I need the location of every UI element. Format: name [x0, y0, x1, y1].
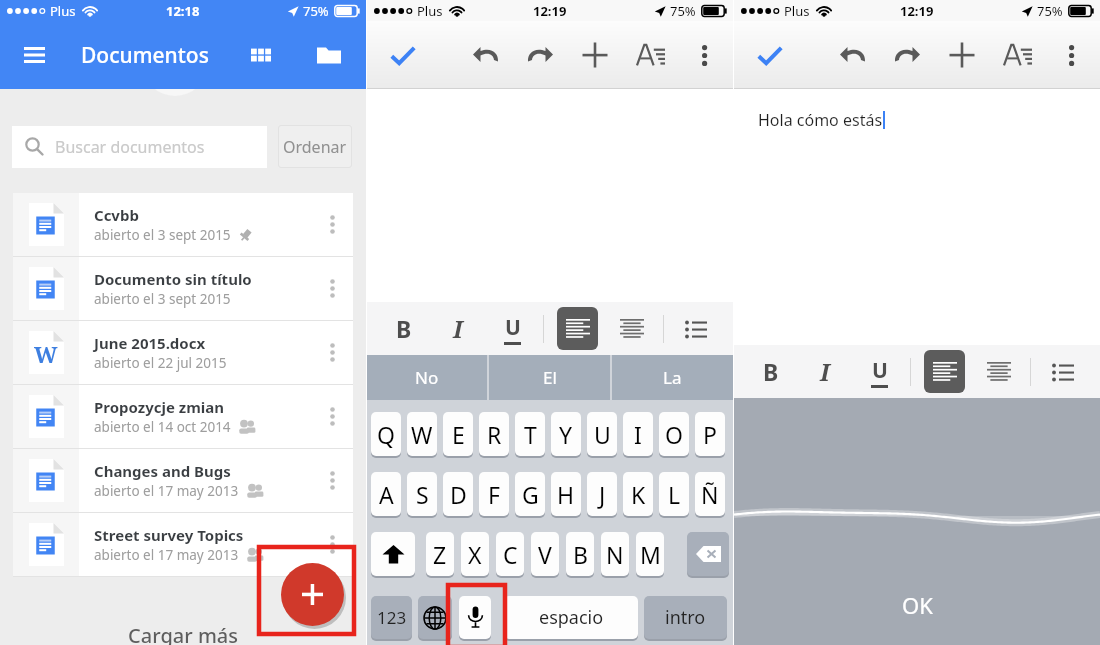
button[interactable]: R: [479, 412, 509, 456]
button[interactable]: Ordenar: [278, 125, 352, 168]
button[interactable]: Bulleted list: [675, 307, 716, 350]
button[interactable]: Backspace: [687, 532, 729, 576]
button[interactable]: More options: [1049, 21, 1093, 89]
button[interactable]: U: [490, 302, 534, 355]
button[interactable]: Ccvbb: [13, 193, 353, 256]
button[interactable]: S: [407, 472, 437, 516]
staticText: R: [487, 419, 502, 450]
button[interactable]: I: [803, 345, 847, 398]
button[interactable]: Grid view: [234, 28, 288, 82]
button[interactable]: W: [13, 321, 353, 384]
button[interactable]: New document: [281, 563, 344, 626]
staticText: La: [663, 366, 682, 389]
button[interactable]: More options: [311, 321, 353, 384]
button[interactable]: B: [382, 302, 426, 355]
button[interactable]: Menu: [8, 29, 60, 81]
staticText: abierto el 3 sept 2015: [94, 290, 231, 308]
staticText: Ñ: [701, 479, 719, 510]
button[interactable]: Z: [426, 532, 454, 576]
button[interactable]: F: [479, 472, 509, 516]
button[interactable]: More options: [682, 21, 726, 89]
button[interactable]: Align left: [924, 350, 965, 393]
button[interactable]: Propozycje zmian: [13, 385, 353, 448]
staticText: D: [450, 479, 467, 510]
button[interactable]: Street survey Topics: [13, 513, 353, 576]
button[interactable]: Bulleted list: [1042, 350, 1083, 393]
button[interactable]: L: [659, 472, 689, 516]
button[interactable]: Cargar más: [0, 622, 366, 645]
button[interactable]: K: [623, 472, 653, 516]
staticText: W: [34, 339, 58, 369]
button[interactable]: J: [587, 472, 617, 516]
staticText: J: [599, 479, 606, 510]
button[interactable]: B: [749, 345, 793, 398]
button[interactable]: I: [623, 412, 653, 456]
staticText: Y: [559, 419, 573, 450]
button[interactable]: Done: [748, 21, 792, 89]
button[interactable]: Insert: [940, 21, 984, 89]
staticText: intro: [665, 605, 706, 630]
button[interactable]: N: [601, 532, 629, 576]
button[interactable]: More options: [311, 385, 353, 448]
button[interactable]: Undo: [464, 21, 508, 89]
button[interactable]: More options: [311, 513, 353, 576]
staticText: OK: [902, 590, 933, 620]
staticText: P: [703, 419, 717, 450]
button[interactable]: E: [443, 412, 473, 456]
staticText: 12:19: [900, 2, 934, 20]
button[interactable]: Align center: [978, 350, 1019, 393]
staticText: C: [503, 539, 518, 570]
button[interactable]: Documento sin título: [13, 257, 353, 320]
button[interactable]: G: [515, 472, 545, 516]
button[interactable]: 123: [371, 596, 412, 639]
button[interactable]: Buscar documentos: [12, 126, 267, 168]
button[interactable]: Y: [551, 412, 581, 456]
staticText: M: [640, 539, 661, 570]
button[interactable]: B: [566, 532, 594, 576]
button[interactable]: W: [407, 412, 437, 456]
button[interactable]: O: [659, 412, 689, 456]
button[interactable]: More options: [311, 193, 353, 256]
button[interactable]: U: [587, 412, 617, 456]
button[interactable]: More options: [311, 449, 353, 512]
button[interactable]: Change keyboard: [418, 596, 452, 639]
button[interactable]: Done: [381, 21, 425, 89]
button[interactable]: I: [436, 302, 480, 355]
button[interactable]: Q: [371, 412, 401, 456]
button[interactable]: espacio: [504, 596, 638, 639]
button[interactable]: A: [371, 472, 401, 516]
button[interactable]: No: [367, 355, 487, 400]
button[interactable]: Insert: [573, 21, 617, 89]
button[interactable]: D: [443, 472, 473, 516]
staticText: S: [416, 479, 429, 510]
button[interactable]: M: [636, 532, 664, 576]
staticText: U: [594, 419, 611, 450]
button[interactable]: Redo: [885, 21, 929, 89]
button[interactable]: Changes and Bugs: [13, 449, 353, 512]
button[interactable]: Align left: [557, 307, 598, 350]
button[interactable]: Dictate: [459, 596, 491, 639]
button[interactable]: La: [612, 355, 733, 400]
button[interactable]: Ñ: [695, 472, 725, 516]
button[interactable]: C: [496, 532, 524, 576]
staticText: G: [522, 479, 539, 510]
staticText: 75%: [1037, 2, 1063, 20]
button[interactable]: El: [489, 355, 610, 400]
button[interactable]: X: [461, 532, 489, 576]
button[interactable]: Folders: [302, 28, 356, 82]
button[interactable]: V: [531, 532, 559, 576]
button[interactable]: Text formatting: [628, 21, 672, 89]
button[interactable]: Redo: [518, 21, 562, 89]
button[interactable]: Undo: [831, 21, 875, 89]
button[interactable]: Text formatting: [995, 21, 1039, 89]
button[interactable]: intro: [644, 596, 727, 639]
button[interactable]: H: [551, 472, 581, 516]
staticText: F: [488, 479, 500, 510]
button[interactable]: U: [857, 345, 901, 398]
button[interactable]: T: [515, 412, 545, 456]
staticText: Ccvbb: [94, 205, 139, 225]
button[interactable]: Align center: [611, 307, 652, 350]
button[interactable]: More options: [311, 257, 353, 320]
button[interactable]: Shift: [371, 532, 415, 576]
button[interactable]: P: [695, 412, 725, 456]
